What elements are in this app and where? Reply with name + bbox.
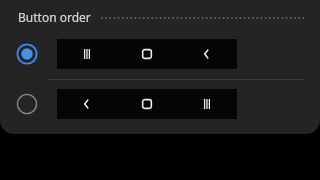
button[interactable]: Button order: recents, home, back [0, 34, 320, 74]
staticText: Button order [18, 9, 91, 25]
button[interactable]: Button order: back, home, recents [0, 84, 320, 124]
